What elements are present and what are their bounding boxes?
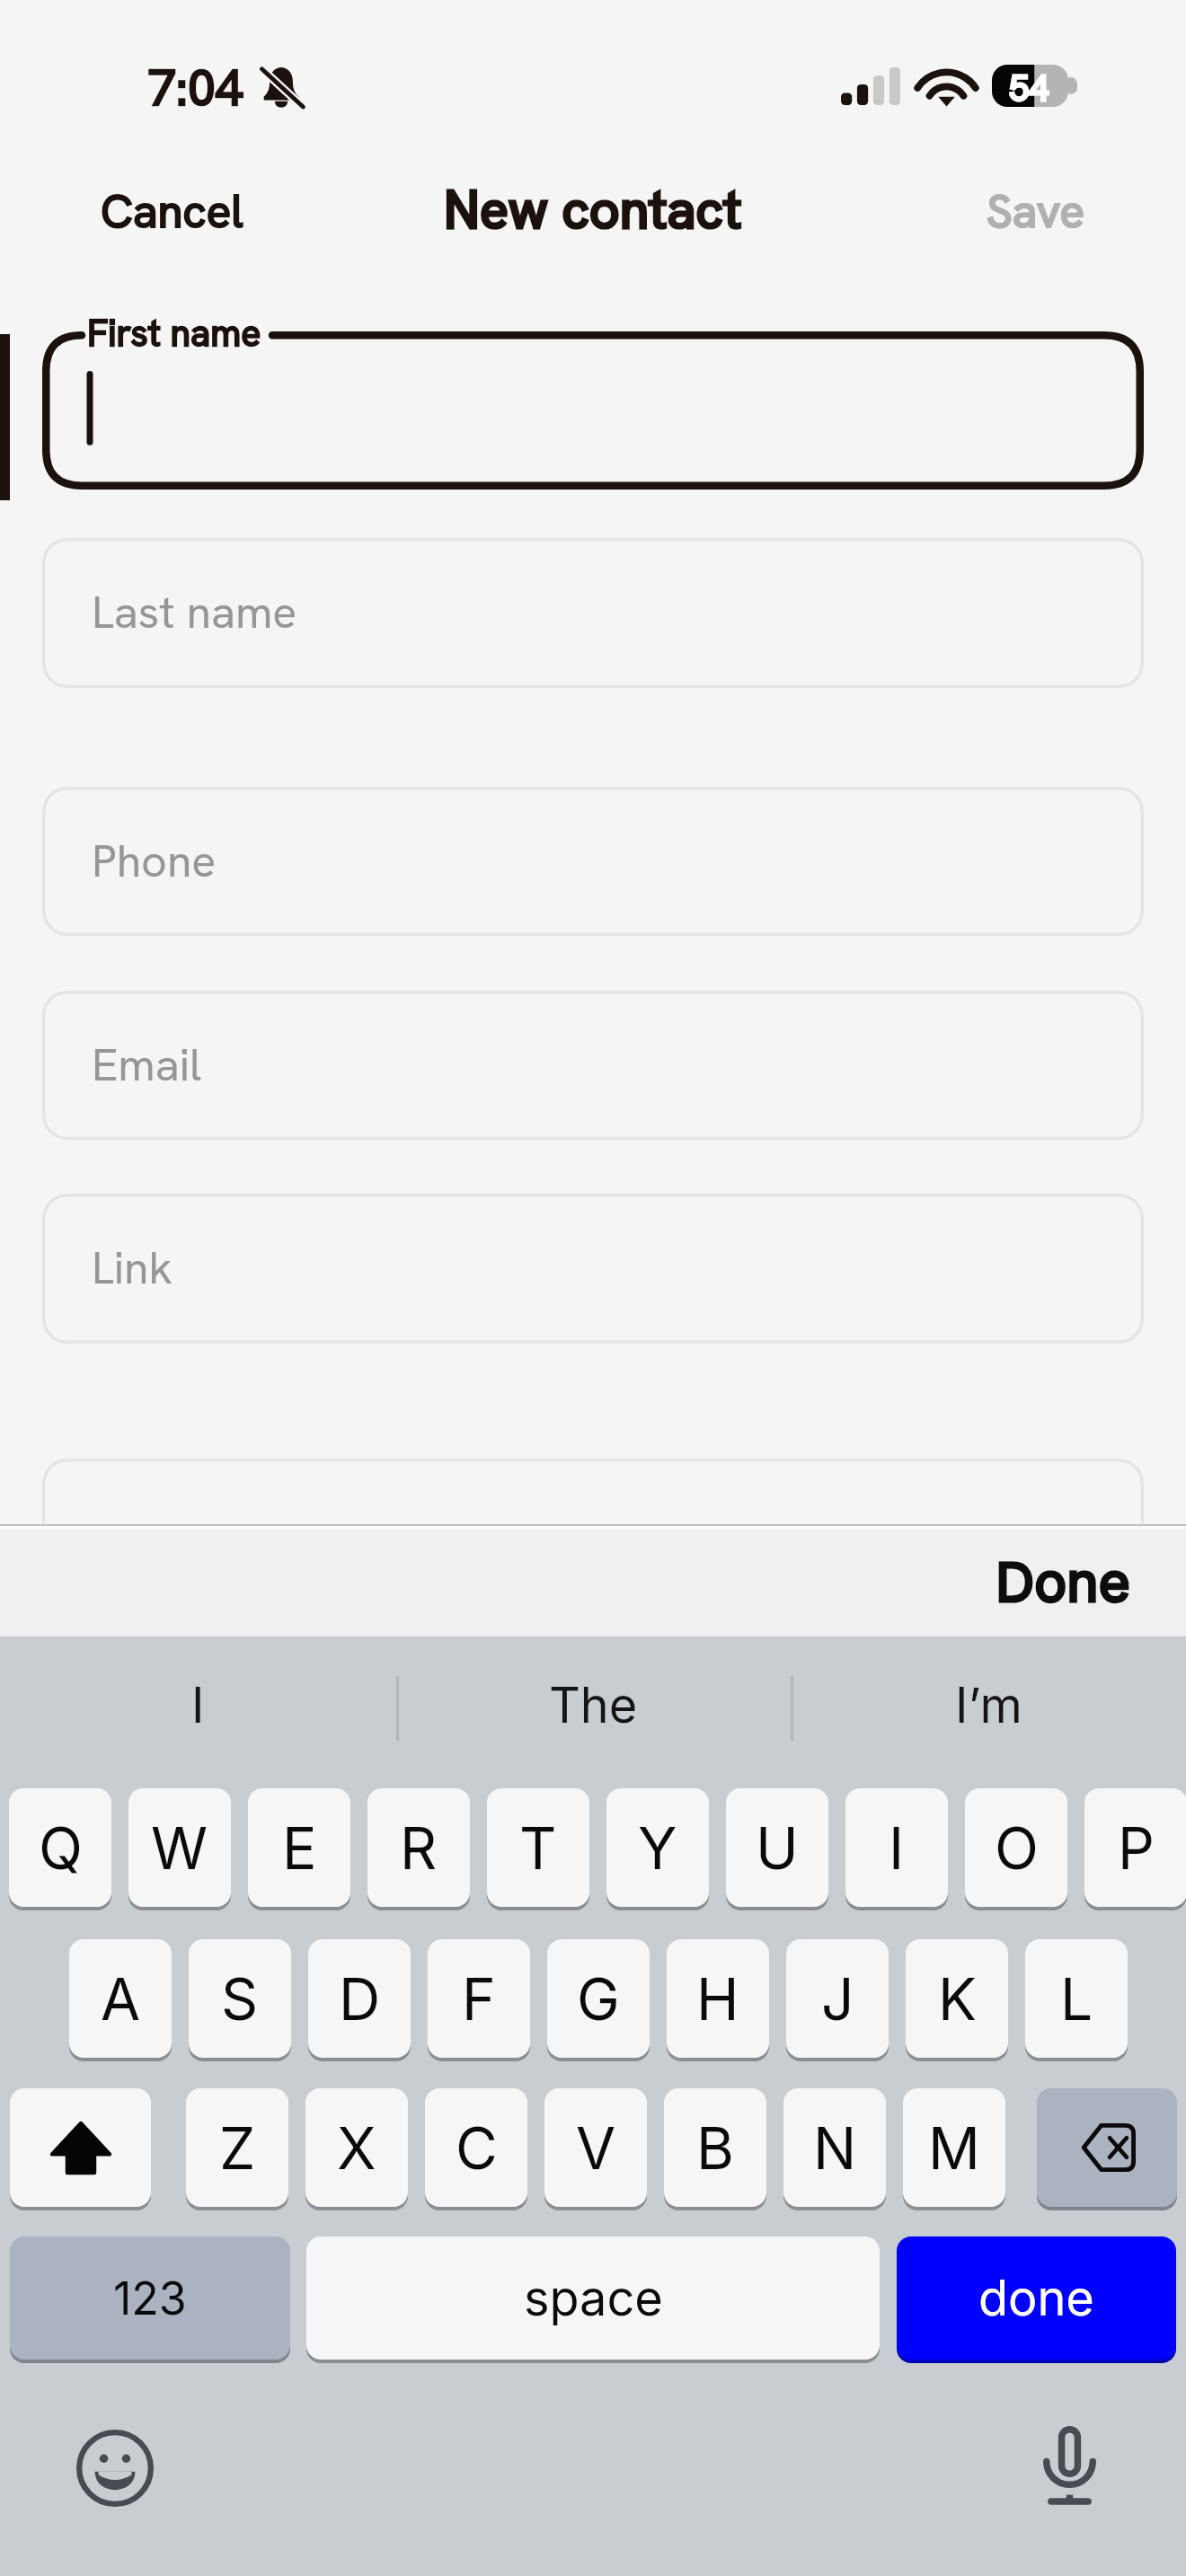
- button[interactable]: T: [487, 1788, 589, 1910]
- staticText: G: [577, 1964, 620, 2033]
- button[interactable]: J: [786, 1939, 889, 2061]
- button[interactable]: I: [845, 1788, 948, 1910]
- button[interactable]: U: [726, 1788, 828, 1910]
- staticText: 123: [113, 2272, 187, 2325]
- button[interactable]: V: [544, 2088, 647, 2210]
- button[interactable]: A: [69, 1939, 172, 2061]
- button[interactable]: First name: [42, 331, 1144, 490]
- staticText: R: [400, 1813, 438, 1883]
- staticText: Phone: [92, 832, 217, 890]
- button[interactable]: Done: [970, 1533, 1155, 1631]
- staticText: C: [456, 2113, 498, 2183]
- button[interactable]: [1037, 2088, 1177, 2210]
- button[interactable]: Dictation: [1043, 2426, 1096, 2504]
- button[interactable]: Q: [9, 1788, 111, 1910]
- staticText: I: [191, 1676, 205, 1734]
- button[interactable]: Link: [42, 1194, 1144, 1344]
- button[interactable]: Save: [949, 160, 1123, 259]
- staticText: D: [339, 1964, 381, 2033]
- staticText: T: [519, 1813, 557, 1883]
- staticText: X: [337, 2113, 376, 2183]
- staticText: New contact: [444, 175, 742, 244]
- staticText: O: [995, 1813, 1039, 1883]
- staticText: N: [813, 2113, 857, 2183]
- staticText: M: [928, 2113, 980, 2183]
- button[interactable]: I: [0, 1636, 396, 1773]
- button[interactable]: S: [189, 1939, 291, 2061]
- button[interactable]: M: [903, 2088, 1005, 2210]
- button[interactable]: P: [1084, 1788, 1186, 1910]
- staticText: Cancel: [101, 181, 243, 237]
- staticText: Y: [638, 1813, 677, 1883]
- button[interactable]: 123: [10, 2236, 290, 2363]
- staticText: Z: [219, 2113, 256, 2183]
- staticText: Q: [39, 1813, 83, 1883]
- button[interactable]: Y: [606, 1788, 709, 1910]
- staticText: space: [524, 2269, 663, 2327]
- button[interactable]: [10, 2088, 151, 2210]
- staticText: P: [1118, 1813, 1155, 1883]
- staticText: J: [821, 1964, 854, 2033]
- button[interactable]: X: [305, 2088, 408, 2210]
- staticText: F: [462, 1964, 496, 2033]
- button[interactable]: O: [965, 1788, 1067, 1910]
- staticText: 54: [1009, 65, 1049, 107]
- staticText: I: [889, 1813, 905, 1883]
- button[interactable]: B: [664, 2088, 766, 2210]
- button[interactable]: Emoji keyboard: [76, 2430, 154, 2507]
- button[interactable]: Z: [186, 2088, 288, 2210]
- staticText: 7:04: [148, 56, 243, 120]
- button[interactable]: W: [128, 1788, 231, 1910]
- staticText: I’m: [955, 1676, 1022, 1734]
- staticText: First name: [87, 309, 261, 357]
- button[interactable]: Phone: [42, 787, 1144, 936]
- button[interactable]: [42, 1459, 1144, 1609]
- button[interactable]: Cancel: [63, 160, 281, 259]
- button[interactable]: G: [547, 1939, 650, 2061]
- button[interactable]: Email: [42, 991, 1144, 1140]
- staticText: B: [696, 2113, 734, 2183]
- staticText: U: [756, 1813, 799, 1883]
- button[interactable]: space: [306, 2236, 880, 2363]
- staticText: Email: [92, 1036, 202, 1094]
- staticText: H: [696, 1964, 739, 2033]
- staticText: Done: [996, 1549, 1130, 1615]
- staticText: A: [101, 1964, 141, 2033]
- button[interactable]: H: [667, 1939, 769, 2061]
- button[interactable]: E: [248, 1788, 350, 1910]
- button[interactable]: done: [897, 2236, 1176, 2363]
- button[interactable]: R: [367, 1788, 470, 1910]
- staticText: Save: [987, 181, 1085, 237]
- staticText: V: [576, 2113, 616, 2183]
- button[interactable]: F: [428, 1939, 530, 2061]
- button[interactable]: Last name: [42, 538, 1144, 688]
- staticText: Last name: [92, 583, 297, 641]
- staticText: L: [1060, 1964, 1093, 2033]
- staticText: done: [978, 2269, 1094, 2327]
- staticText: S: [221, 1964, 259, 2033]
- staticText: K: [938, 1964, 977, 2033]
- button[interactable]: K: [906, 1939, 1008, 2061]
- button[interactable]: N: [783, 2088, 886, 2210]
- staticText: E: [282, 1813, 317, 1883]
- button[interactable]: I’m: [791, 1636, 1186, 1773]
- button[interactable]: D: [308, 1939, 411, 2061]
- button[interactable]: C: [425, 2088, 527, 2210]
- button[interactable]: L: [1025, 1939, 1128, 2061]
- staticText: Link: [92, 1239, 173, 1297]
- button[interactable]: The: [396, 1636, 791, 1773]
- staticText: W: [151, 1813, 208, 1883]
- staticText: The: [549, 1676, 638, 1734]
